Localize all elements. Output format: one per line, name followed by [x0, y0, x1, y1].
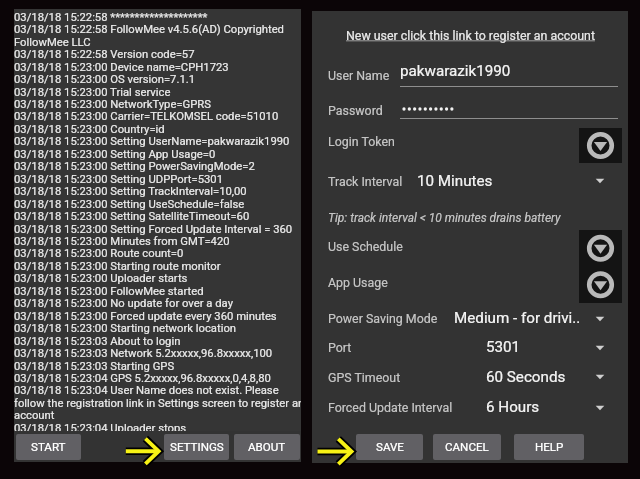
staticText: 03/18/18 15:23:00 Route count=0: [14, 247, 301, 260]
button[interactable]: Open dropdown: [589, 397, 611, 419]
staticText: 03/18/18 15:23:04 Uploader stops: [14, 422, 301, 431]
staticText: 03/18/18 15:23:00 Setting Forced Update …: [14, 223, 301, 236]
staticText: 03/18/18 15:23:00 Setting UserName=pakwa…: [14, 135, 301, 148]
staticText: Power Saving Mode: [328, 311, 438, 326]
staticText: 03/18/18 15:23:00 Country=id: [14, 123, 301, 136]
button[interactable]: Open dropdown: [589, 337, 611, 359]
staticText: 03/18/18 15:23:03 Starting GPS: [14, 360, 301, 373]
button[interactable]: New user click this link to register an …: [346, 28, 596, 44]
staticText: 03/18/18 15:23:00 NetworkType=GPRS: [14, 98, 301, 111]
staticText: Login Token: [328, 134, 395, 149]
staticText: Use Schedule: [328, 239, 403, 254]
staticText: New user click this link to register an …: [346, 28, 595, 43]
button[interactable]: Open dropdown: [589, 308, 611, 330]
staticText: 03/18/18 15:23:00 No update for over a d…: [14, 297, 301, 310]
staticText: 03/18/18 15:22:58 ********************: [14, 11, 301, 24]
staticText: HELP: [535, 440, 564, 454]
staticText: 03/18/18 15:23:04 User Name does not exi…: [14, 384, 301, 397]
staticText: 03/18/18 15:23:00 Minutes from GMT=420: [14, 235, 301, 248]
staticText: SETTINGS: [170, 440, 224, 454]
staticText: 03/18/18 15:23:00 Starting network locat…: [14, 322, 301, 335]
staticText: Medium - for drivi..: [454, 309, 581, 327]
staticText: User Name: [328, 68, 390, 83]
staticText: 03/18/18 15:23:00 Setting UDPPort=5301: [14, 173, 301, 186]
staticText: 03/18/18 15:23:00 Setting SatelliteTimeo…: [14, 210, 301, 223]
staticText: 03/18/18 15:23:00 Trial service: [14, 86, 301, 99]
button[interactable]: 03/18/18 15:22:58 ********************: [14, 9, 301, 431]
staticText: 03/18/18 15:23:03 About to login: [14, 335, 301, 348]
staticText: Forced Update Interval: [328, 400, 453, 415]
staticText: CANCEL: [445, 440, 489, 454]
staticText: SAVE: [376, 440, 404, 454]
staticText: 03/18/18 15:23:00 Setting TrackInterval=…: [14, 185, 301, 198]
staticText: FollowMee LLC: [14, 36, 301, 49]
staticText: 03/18/18 15:23:00 OS version=7.1.1: [14, 73, 301, 86]
staticText: 03/18/18 15:23:00 Setting PowerSavingMod…: [14, 160, 301, 173]
staticText: pakwarazik1990: [400, 62, 511, 80]
staticText: 03/18/18 15:23:00 Starting route monitor: [14, 260, 301, 273]
button[interactable]: Open dropdown: [589, 170, 611, 192]
staticText: 03/18/18 15:23:03 Network 5.2xxxxx,96.8x…: [14, 347, 301, 360]
staticText: 03/18/18 15:23:00 Uploader starts: [14, 272, 301, 285]
staticText: 03/18/18 15:22:58 FollowMee v4.5.6(AD) C…: [14, 23, 301, 36]
button[interactable]: SETTINGS: [164, 434, 229, 460]
staticText: 03/18/18 15:23:00 Device name=CPH1723: [14, 61, 301, 74]
staticText: 03/18/18 15:23:00 Forced update every 36…: [14, 310, 301, 323]
staticText: 03/18/18 15:23:00 Carrier=TELKOMSEL code…: [14, 110, 301, 123]
button[interactable]: Expand: [579, 128, 622, 163]
staticText: 03/18/18 15:23:00 FollowMee started: [14, 285, 301, 298]
button[interactable]: START: [16, 434, 81, 460]
staticText: 03/18/18 15:23:00 Setting UseSchedule=fa…: [14, 198, 301, 211]
button[interactable]: HELP: [514, 434, 584, 460]
staticText: Password: [328, 103, 383, 118]
button[interactable]: SAVE: [356, 434, 423, 460]
staticText: 03/18/18 15:22:58 Version code=57: [14, 48, 301, 61]
staticText: App Usage: [328, 275, 388, 290]
staticText: START: [31, 440, 66, 454]
staticText: 03/18/18 15:23:00 Setting App Usage=0: [14, 148, 301, 161]
staticText: 60 Seconds: [486, 368, 566, 386]
staticText: GPS Timeout: [328, 370, 401, 385]
staticText: Port: [328, 340, 352, 355]
staticText: 10 Minutes: [417, 172, 493, 190]
staticText: 5301: [486, 338, 521, 356]
button[interactable]: Expand: [579, 230, 622, 303]
staticText: follow the registration link in Settings…: [14, 397, 301, 410]
staticText: 03/18/18 15:23:04 GPS 5.2xxxxx,96.8xxxxx…: [14, 372, 301, 385]
button[interactable]: Open dropdown: [589, 366, 611, 388]
staticText: 6 Hours: [486, 398, 540, 416]
staticText: Track Interval: [328, 174, 403, 189]
staticText: account: [14, 409, 301, 422]
button[interactable]: CANCEL: [433, 434, 501, 460]
button[interactable]: ABOUT: [234, 434, 300, 460]
staticText: ABOUT: [248, 440, 286, 454]
staticText: Tip: track interval < 10 minutes drains …: [328, 211, 561, 225]
